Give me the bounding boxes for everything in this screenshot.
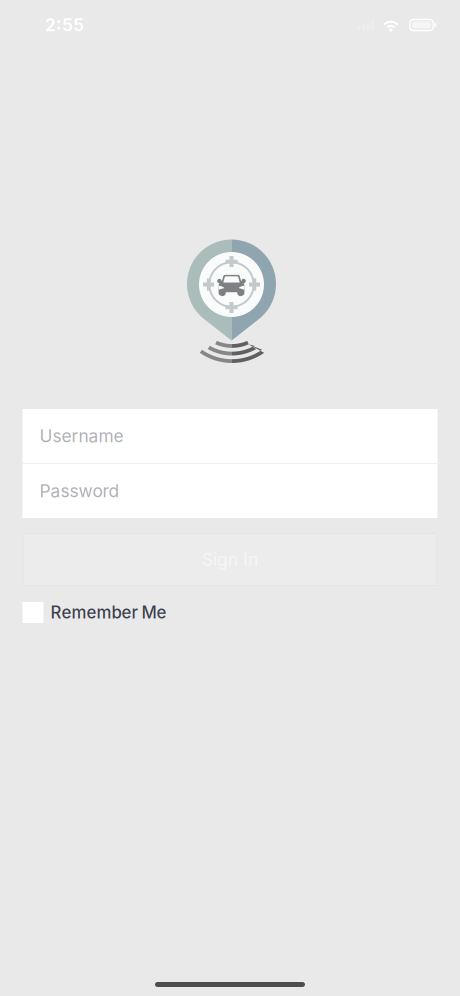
staticText: 2:55	[45, 14, 84, 35]
staticText: Sign In	[202, 549, 258, 570]
staticText: Password	[39, 480, 119, 501]
staticText: Username	[39, 425, 123, 446]
staticText: Remember Me	[50, 602, 166, 623]
button[interactable]: Remember Me	[22, 598, 437, 627]
